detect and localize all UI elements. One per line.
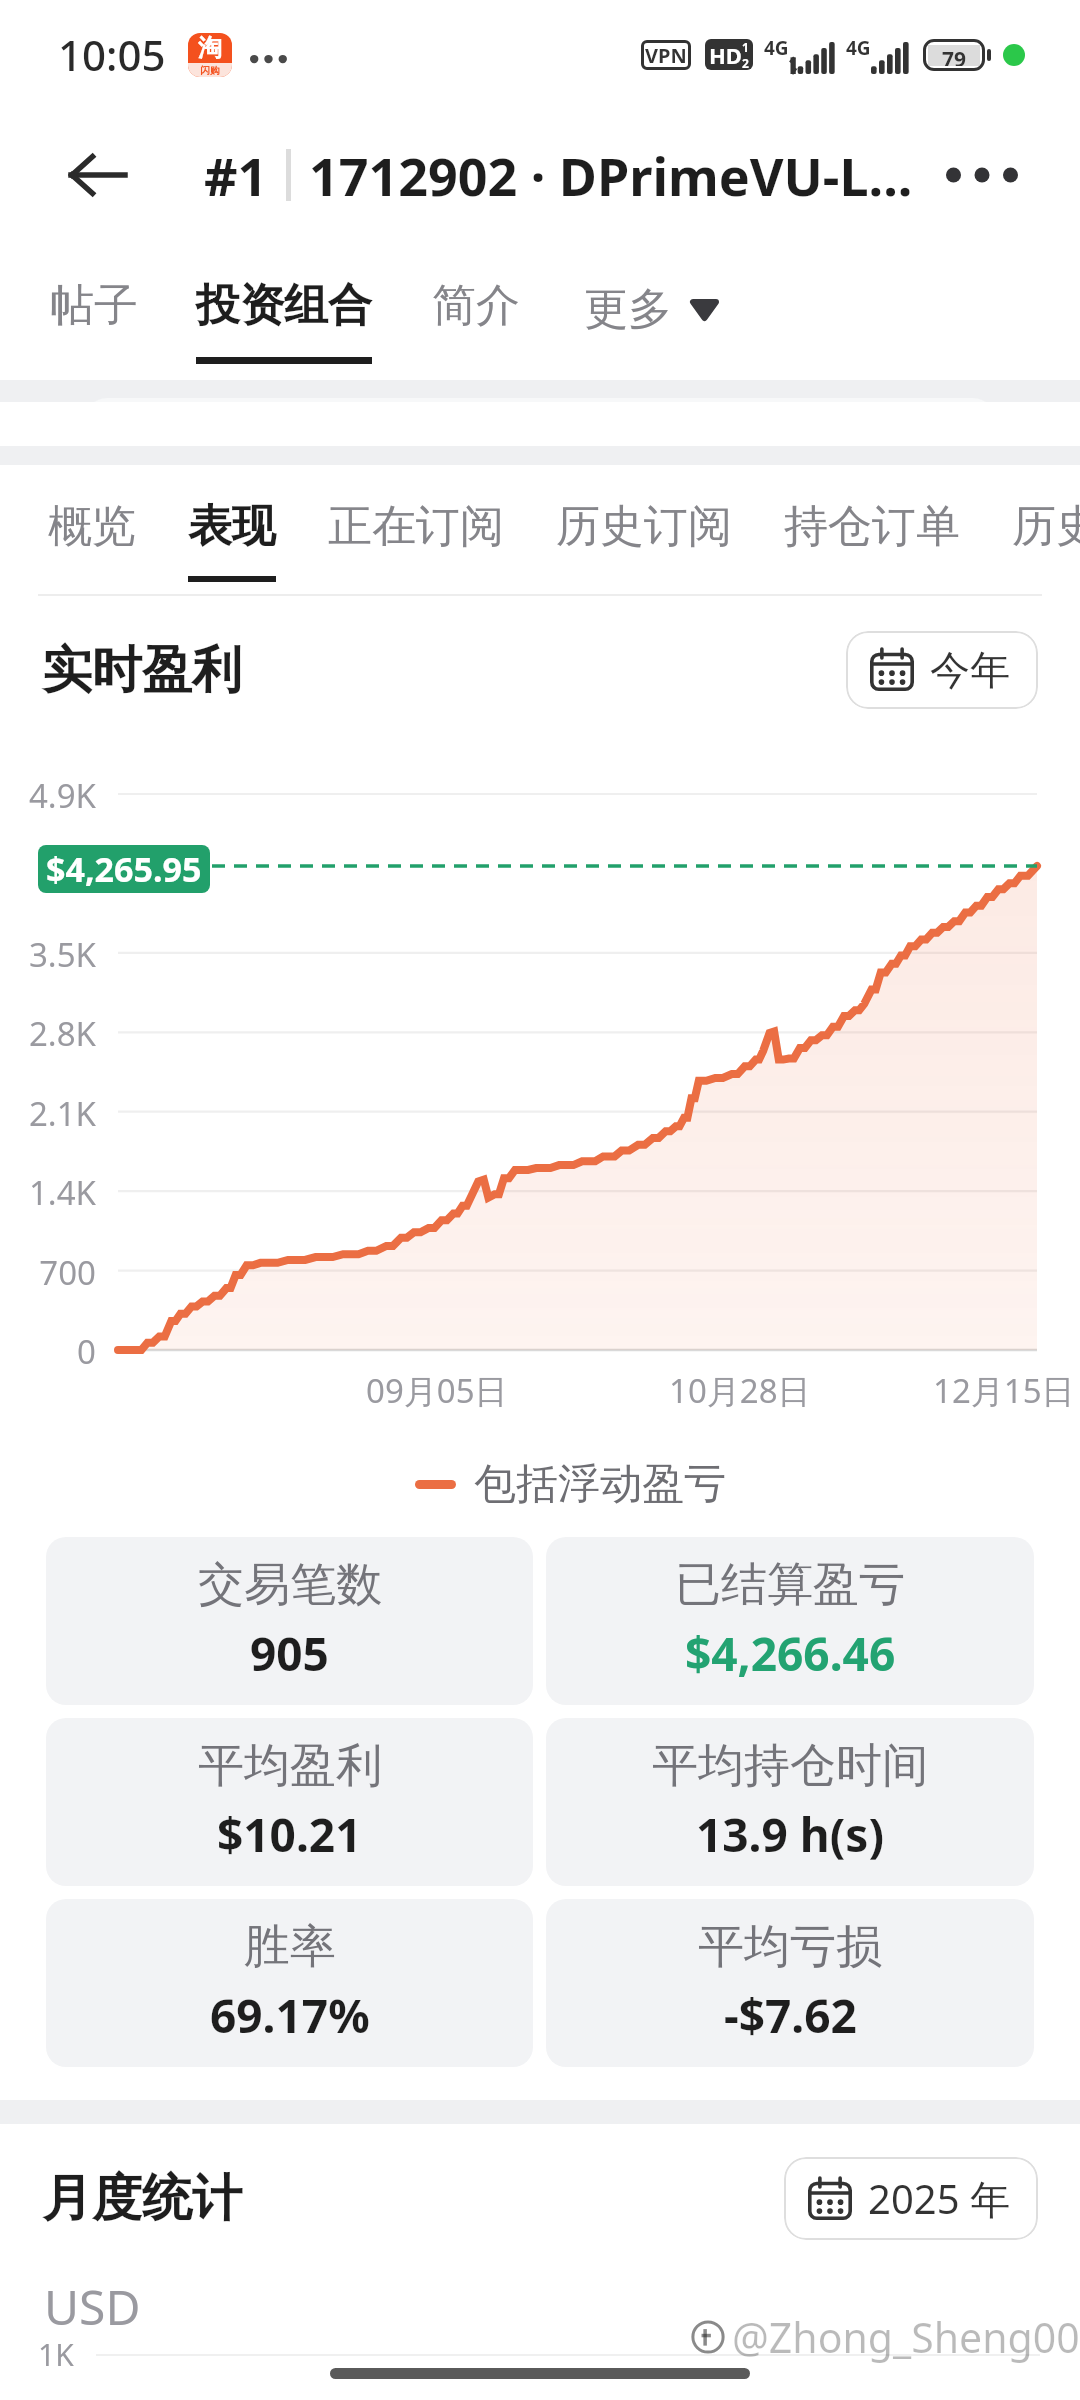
staticText: HD	[709, 40, 742, 70]
button[interactable]: 正在订阅	[302, 499, 530, 582]
staticText: -$7.62	[724, 1984, 857, 2047]
staticText: 平均亏损	[698, 1918, 882, 1976]
button[interactable]: 帖子	[50, 240, 138, 364]
button[interactable]: 平均盈利	[46, 1718, 533, 1886]
button[interactable]: 概览	[22, 499, 162, 582]
staticText: 4G	[846, 35, 871, 61]
staticText: 闪购	[200, 64, 220, 77]
button[interactable]: 2025 年	[784, 2157, 1038, 2240]
staticText: VPN	[645, 42, 687, 69]
staticText: 69.17%	[210, 1984, 370, 2047]
staticText: 1	[742, 39, 749, 55]
staticText: 已结算盈亏	[675, 1556, 905, 1614]
button[interactable]: 投资组合	[196, 240, 372, 364]
staticText: 交易笔数	[198, 1556, 382, 1614]
staticText: 13.9 h(s)	[696, 1803, 885, 1866]
staticText: 2.8K	[0, 1011, 96, 1056]
button[interactable]: 简介	[432, 240, 520, 364]
button[interactable]: 已结算盈亏	[546, 1537, 1034, 1705]
staticText: $4,265.95	[46, 846, 202, 892]
button[interactable]: 交易笔数	[46, 1537, 533, 1705]
staticText: 平均盈利	[198, 1737, 382, 1795]
button[interactable]: 持仓订单	[758, 499, 986, 582]
staticText: 1K	[38, 2334, 74, 2375]
staticText: 10月28日	[669, 1368, 811, 1413]
button[interactable]: 平均持仓时间	[546, 1718, 1034, 1886]
staticText: 4.9K	[0, 773, 96, 818]
staticText: @Zhong_Sheng001	[732, 2309, 1080, 2365]
staticText: 2	[742, 55, 749, 70]
staticText: 1.4K	[0, 1170, 96, 1215]
staticText: 79	[942, 45, 967, 66]
staticText: 2.1K	[0, 1091, 96, 1136]
staticText: 905	[250, 1622, 329, 1685]
staticText: 持仓订单	[784, 499, 960, 554]
button[interactable]: 历史	[986, 499, 1080, 582]
button[interactable]: More options	[932, 125, 1032, 225]
staticText: 2025 年	[868, 2171, 1010, 2226]
staticText: 历史	[1012, 499, 1080, 554]
staticText: 简介	[432, 278, 520, 333]
staticText: 平均持仓时间	[652, 1737, 928, 1795]
staticText: $4,266.46	[685, 1622, 896, 1685]
button[interactable]: 历史订阅	[530, 499, 758, 582]
button[interactable]: 平均亏损	[546, 1899, 1034, 2067]
staticText: $10.21	[217, 1803, 362, 1866]
staticText: 胜率	[244, 1918, 336, 1976]
button[interactable]: 表现	[162, 499, 302, 582]
staticText: 4G	[764, 35, 789, 61]
staticText: 历史订阅	[556, 499, 732, 554]
staticText: 09月05日	[366, 1368, 508, 1413]
button[interactable]: Back	[42, 120, 152, 230]
staticText: 包括浮动盈亏	[474, 1458, 726, 1511]
staticText: 1712902 · DPrimeVU-L...	[309, 140, 913, 211]
staticText: 10:05	[58, 26, 166, 83]
button[interactable]: 今年	[846, 631, 1038, 709]
button[interactable]: 胜率	[46, 1899, 533, 2067]
staticText: 月度统计	[42, 2167, 242, 2230]
staticText: 概览	[48, 499, 136, 554]
staticText: 3.5K	[0, 932, 96, 977]
staticText: 正在订阅	[328, 499, 504, 554]
button[interactable]: 更多	[584, 282, 719, 337]
staticText: 更多	[584, 282, 672, 337]
staticText: 实时盈利	[42, 639, 242, 702]
staticText: #1	[204, 140, 268, 211]
staticText: 0	[0, 1329, 96, 1374]
staticText: 淘	[198, 33, 222, 63]
staticText: 表现	[188, 499, 276, 554]
staticText: 700	[0, 1250, 96, 1295]
staticText: 投资组合	[196, 278, 372, 333]
staticText: 12月15日	[933, 1368, 1075, 1413]
staticText: USD	[44, 2274, 141, 2339]
staticText: 帖子	[50, 278, 138, 333]
staticText: 今年	[930, 645, 1010, 695]
